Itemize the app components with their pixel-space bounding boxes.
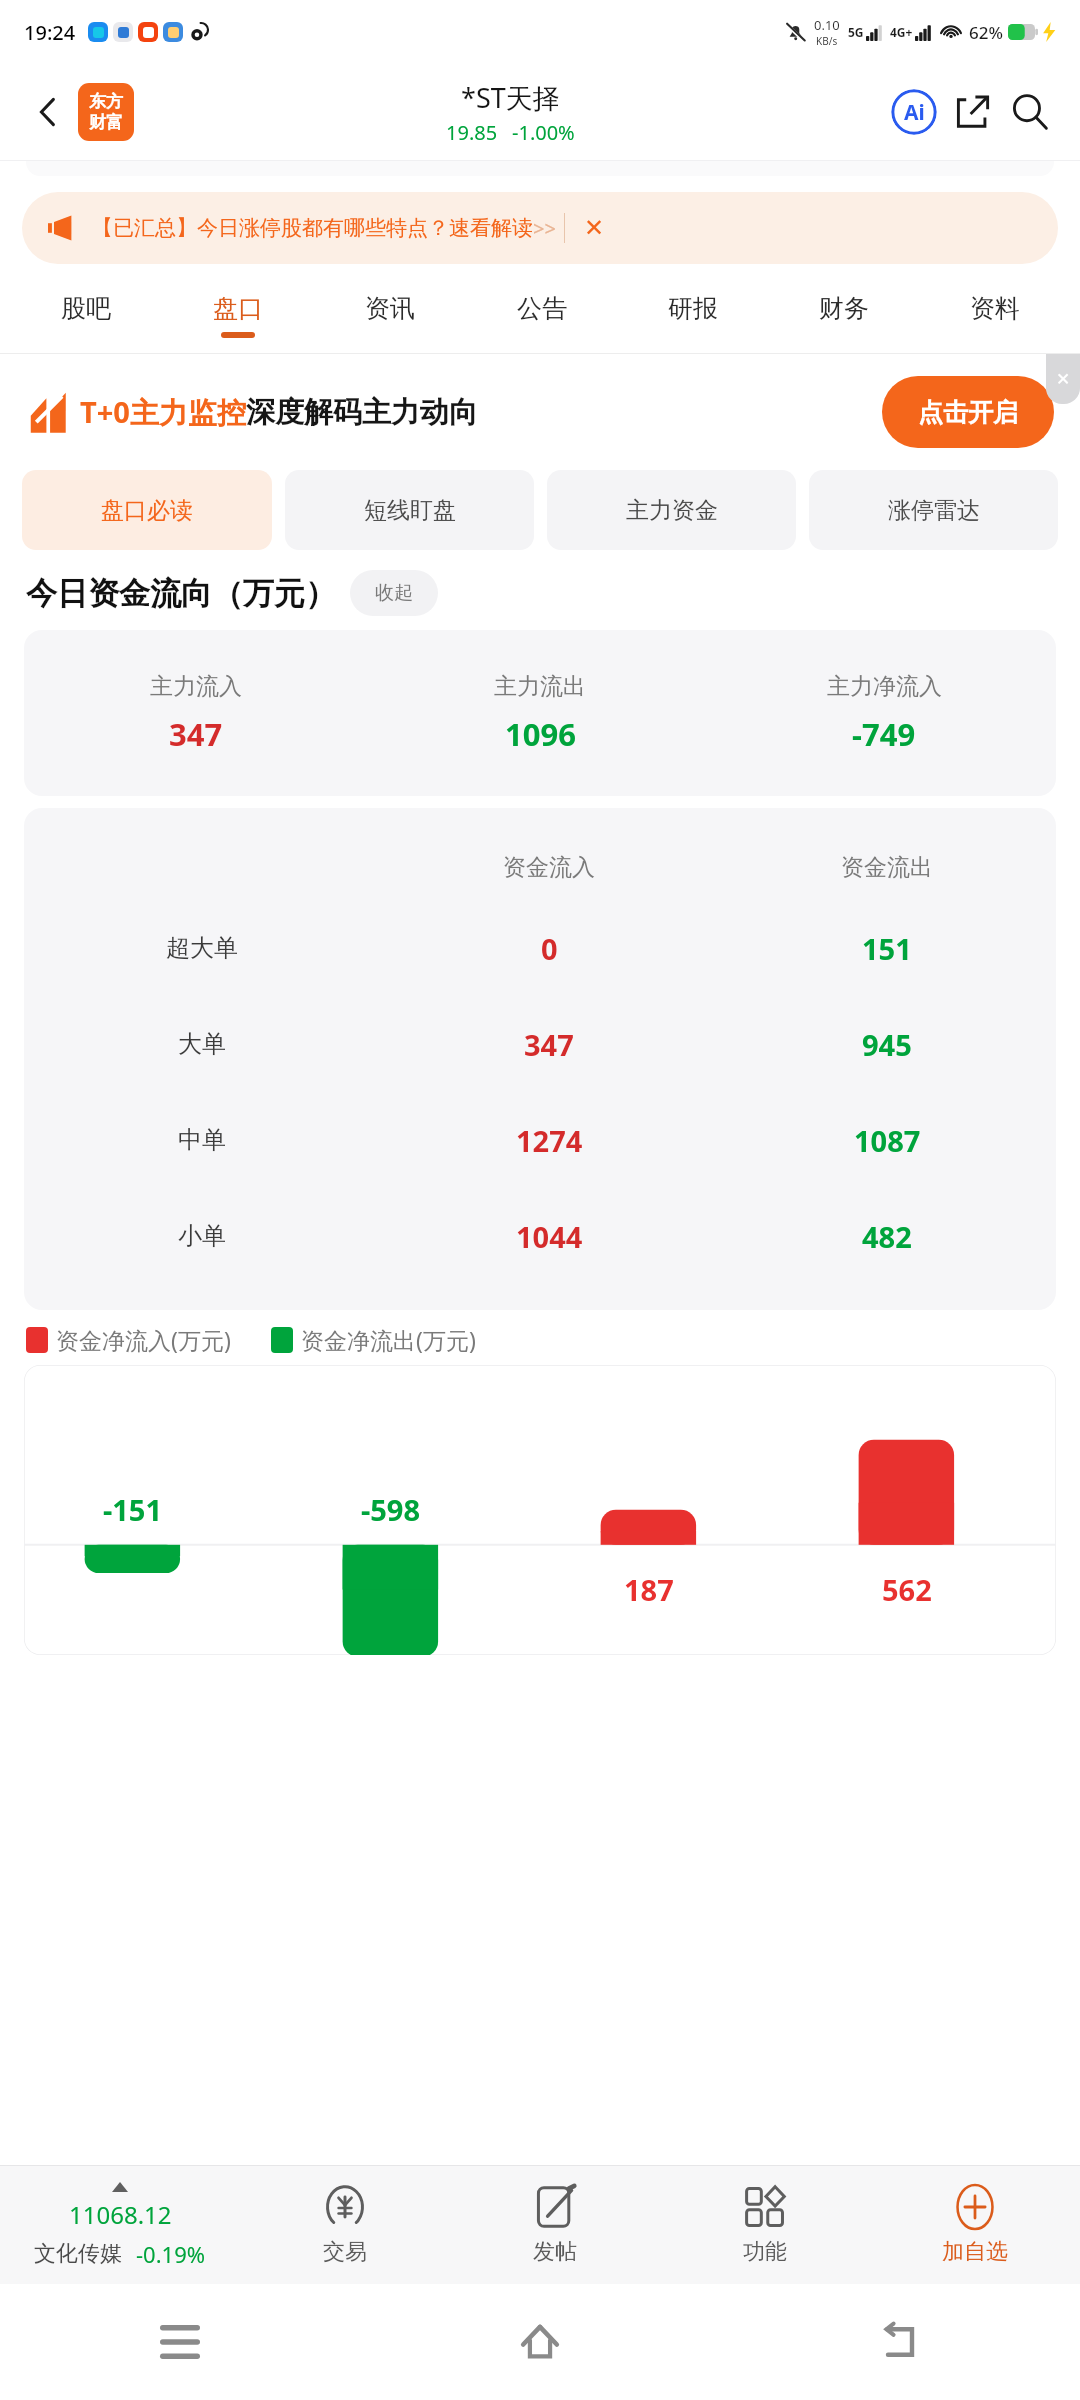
- staticText: 1087: [854, 1121, 921, 1160]
- staticText: 19.85: [446, 119, 498, 146]
- staticText: 1274: [516, 1121, 583, 1160]
- staticText: 资金流入: [503, 853, 595, 882]
- staticText: 19:24: [24, 19, 76, 46]
- button[interactable]: 财务: [768, 277, 919, 353]
- staticText: 资金净流入(万元): [56, 1324, 231, 1355]
- staticText: 功能: [743, 2238, 787, 2266]
- button[interactable]: 超大单: [24, 900, 1056, 996]
- staticText: 347: [524, 1025, 574, 1064]
- staticText: >>: [533, 215, 556, 242]
- staticText: 主力流出: [494, 672, 586, 701]
- button[interactable]: 资讯: [314, 277, 466, 353]
- staticText: KB/s: [816, 34, 838, 48]
- staticText: 交易: [323, 2238, 367, 2266]
- staticText: 5G: [848, 24, 864, 40]
- button[interactable]: 【已汇总】今日涨停股都有哪些特点？速看解读: [22, 192, 1058, 264]
- staticText: 东方: [89, 91, 123, 112]
- staticText: *ST天择: [461, 79, 560, 116]
- staticText: -749: [852, 713, 916, 755]
- button[interactable]: 股吧: [10, 277, 162, 353]
- button[interactable]: 大单: [24, 996, 1056, 1092]
- button[interactable]: 发帖: [450, 2166, 660, 2284]
- button[interactable]: Back: [22, 86, 74, 138]
- staticText: -0.19%: [136, 2239, 206, 2269]
- button[interactable]: -151: [24, 1365, 1056, 1655]
- staticText: ✕: [584, 214, 605, 242]
- button[interactable]: Home: [360, 2284, 720, 2400]
- staticText: 收起: [375, 581, 413, 605]
- staticText: 1096: [505, 713, 576, 755]
- staticText: ✕: [1056, 369, 1071, 389]
- staticText: 0: [541, 929, 558, 968]
- staticText: 【已汇总】今日涨停股都有哪些特点？速看解读: [92, 215, 533, 241]
- button[interactable]: 东方财富: [78, 83, 134, 141]
- staticText: 财务: [819, 293, 869, 324]
- staticText: 盘口必读: [101, 496, 193, 525]
- button[interactable]: 中单: [24, 1092, 1056, 1188]
- button[interactable]: 11068.12: [0, 2166, 240, 2284]
- staticText: -1.00%: [512, 119, 575, 146]
- button[interactable]: Back: [720, 2284, 1080, 2400]
- staticText: 今日资金流向（万元）: [26, 574, 336, 613]
- button[interactable]: 点击开启: [882, 376, 1054, 448]
- staticText: -598: [361, 1490, 421, 1529]
- staticText: Ai: [904, 98, 925, 127]
- staticText: 主力资金: [626, 496, 718, 525]
- button[interactable]: Close ad: [1046, 354, 1080, 404]
- button[interactable]: 加自选: [870, 2166, 1080, 2284]
- staticText: 资讯: [365, 293, 415, 324]
- button[interactable]: 盘口必读: [22, 470, 272, 550]
- staticText: 482: [862, 1217, 912, 1256]
- button[interactable]: 交易: [240, 2166, 450, 2284]
- staticText: T+0主力监控: [80, 392, 246, 432]
- staticText: 财富: [89, 112, 123, 133]
- staticText: 1044: [516, 1217, 583, 1256]
- staticText: 公告: [517, 293, 567, 324]
- button[interactable]: AI: [886, 84, 942, 140]
- staticText: 盘口: [213, 293, 263, 324]
- staticText: 加自选: [942, 2238, 1008, 2266]
- staticText: 短线盯盘: [364, 496, 456, 525]
- button[interactable]: 主力流入: [24, 630, 1056, 796]
- staticText: 涨停雷达: [888, 496, 980, 525]
- staticText: 发帖: [533, 2238, 577, 2266]
- staticText: 深度解码主力动向: [246, 394, 478, 431]
- staticText: 945: [862, 1025, 912, 1064]
- button[interactable]: 涨停雷达: [809, 470, 1058, 550]
- staticText: 小单: [178, 1221, 226, 1251]
- staticText: 点击开启: [918, 397, 1018, 428]
- button[interactable]: 资料: [919, 277, 1070, 353]
- staticText: 347: [169, 713, 223, 755]
- button[interactable]: 短线盯盘: [285, 470, 534, 550]
- staticText: 研报: [668, 293, 718, 324]
- staticText: 股吧: [61, 293, 111, 324]
- button[interactable]: 功能: [660, 2166, 870, 2284]
- button[interactable]: 主力资金: [547, 470, 796, 550]
- staticText: 超大单: [166, 933, 238, 963]
- button[interactable]: 小单: [24, 1188, 1056, 1284]
- button[interactable]: 盘口: [162, 277, 314, 353]
- staticText: 主力流入: [150, 672, 242, 701]
- staticText: 文化传媒: [34, 2240, 122, 2268]
- staticText: 资料: [970, 293, 1020, 324]
- staticText: 4G+: [890, 24, 913, 40]
- button[interactable]: 收起: [350, 570, 438, 616]
- button[interactable]: Share: [944, 84, 1000, 140]
- staticText: 大单: [178, 1029, 226, 1059]
- staticText: 562: [882, 1570, 932, 1609]
- staticText: -151: [103, 1490, 163, 1529]
- staticText: 151: [862, 929, 912, 968]
- button[interactable]: Search: [1002, 84, 1058, 140]
- staticText: 主力净流入: [827, 672, 942, 701]
- button[interactable]: 研报: [617, 277, 768, 353]
- button[interactable]: 公告: [466, 277, 617, 353]
- staticText: 187: [624, 1570, 674, 1609]
- staticText: 0.10: [814, 16, 840, 34]
- button[interactable]: Recents: [0, 2284, 360, 2400]
- staticText: 62%: [969, 21, 1003, 44]
- staticText: 资金流出: [841, 853, 933, 882]
- staticText: 资金净流出(万元): [301, 1324, 476, 1355]
- button[interactable]: Close: [577, 211, 611, 245]
- staticText: 11068.12: [69, 2198, 172, 2231]
- staticText: 中单: [178, 1125, 226, 1155]
